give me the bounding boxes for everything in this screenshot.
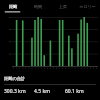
button[interactable]: 300.3 km (4, 88, 34, 95)
button[interactable]: 60.1 km (65, 88, 96, 95)
staticText: 時間 (34, 4, 42, 9)
staticText: 60.1 km (65, 88, 84, 95)
other: Distance bar chart (0, 13, 100, 73)
staticText: 4.5 km (34, 88, 50, 95)
button[interactable]: 上昇 (50, 0, 75, 13)
other: Selected tab indicator (0, 0, 100, 13)
staticText: 300.3 km (4, 88, 26, 95)
button[interactable]: 4.5 km (34, 88, 65, 95)
staticText: 距離 (9, 4, 17, 9)
staticText: 距離の合計 (4, 76, 26, 81)
staticText: 上昇 (59, 4, 67, 9)
staticText: カロリー (79, 4, 96, 9)
button[interactable]: 距離 (0, 0, 25, 13)
button[interactable]: 時間 (25, 0, 50, 13)
button[interactable]: カロリー (75, 0, 100, 13)
